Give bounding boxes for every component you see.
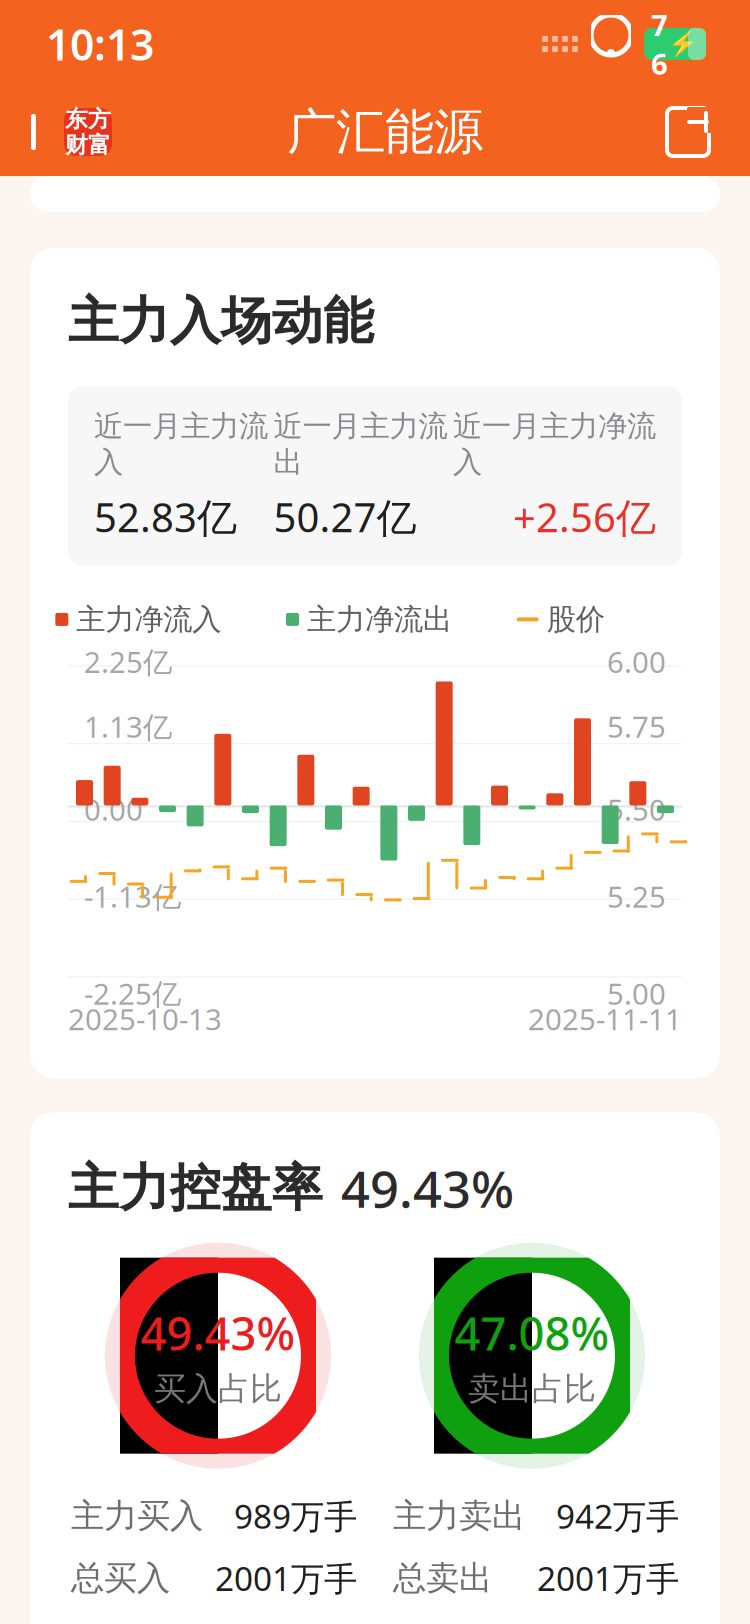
- staticText: 财富: [65, 131, 111, 159]
- staticText: 0.00: [84, 790, 143, 829]
- staticText: 2001万手: [215, 1556, 357, 1600]
- button[interactable]: 分享: [650, 88, 750, 176]
- staticText: 52.83亿: [94, 490, 237, 543]
- staticText: 主力净流入: [76, 601, 221, 637]
- staticText: 近一月主力净流入: [453, 408, 656, 480]
- staticText: 49.43%: [341, 1154, 514, 1222]
- staticText: 近一月主力流入: [94, 408, 268, 480]
- staticText: 47.08%: [454, 1303, 609, 1363]
- staticText: 76: [651, 5, 668, 83]
- staticText: 5.25: [607, 877, 666, 916]
- staticText: 2.25亿: [84, 642, 172, 681]
- button[interactable]: 返回: [0, 88, 120, 176]
- staticText: -1.13亿: [84, 877, 181, 916]
- staticText: 主力买入: [71, 1495, 203, 1536]
- staticText: 50.27亿: [273, 490, 416, 543]
- staticText: 东方: [65, 105, 111, 133]
- staticText: 主力入场动能: [68, 290, 374, 352]
- staticText: 卖出占比: [468, 1369, 596, 1408]
- staticText: 1.13亿: [84, 707, 172, 746]
- staticText: 买入占比: [154, 1369, 282, 1408]
- staticText: 5.75: [607, 707, 666, 746]
- staticText: 股价: [547, 601, 605, 637]
- staticText: 主力卖出: [393, 1495, 525, 1536]
- staticText: ⚡: [668, 30, 698, 58]
- staticText: 5.00: [607, 974, 666, 1013]
- staticText: 总卖出: [393, 1558, 492, 1598]
- staticText: 989万手: [234, 1494, 357, 1538]
- staticText: 942万手: [556, 1494, 679, 1538]
- staticText: 近一月主力流出: [273, 408, 447, 480]
- staticText: 广汇能源: [287, 102, 483, 162]
- staticText: +2.56亿: [513, 490, 656, 543]
- staticText: 主力控盘率: [68, 1157, 323, 1219]
- staticText: 主力净流出: [307, 601, 452, 637]
- staticText: 2001万手: [537, 1556, 679, 1600]
- staticText: 2025-10-13: [68, 999, 222, 1038]
- staticText: 10:13: [46, 16, 154, 72]
- staticText: 6.00: [607, 642, 666, 681]
- staticText: -2.25亿: [84, 974, 181, 1013]
- staticText: 5.50: [607, 790, 666, 829]
- staticText: 2025-11-11: [528, 999, 682, 1038]
- staticText: 总买入: [71, 1558, 170, 1598]
- staticText: 49.43%: [140, 1303, 295, 1363]
